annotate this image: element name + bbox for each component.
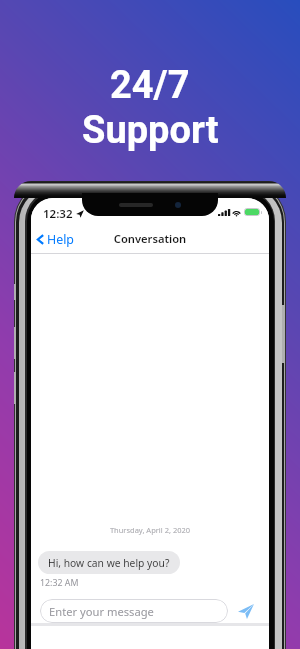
staticText: Conversation (31, 231, 269, 246)
staticText: 24/7 (110, 63, 190, 108)
button[interactable]: Help (34, 226, 79, 253)
staticText: Help (47, 231, 74, 248)
button[interactable]: Enter your message (40, 599, 228, 623)
staticText: Enter your message (49, 604, 154, 619)
staticText: Hi, how can we help you? (48, 556, 170, 570)
staticText: 12:32 AM (40, 577, 79, 589)
staticText: Thursday, April 2, 2020 (31, 525, 269, 535)
staticText: Support (82, 108, 219, 153)
button[interactable]: Send (234, 599, 258, 623)
staticText: 12:32 (43, 206, 73, 222)
